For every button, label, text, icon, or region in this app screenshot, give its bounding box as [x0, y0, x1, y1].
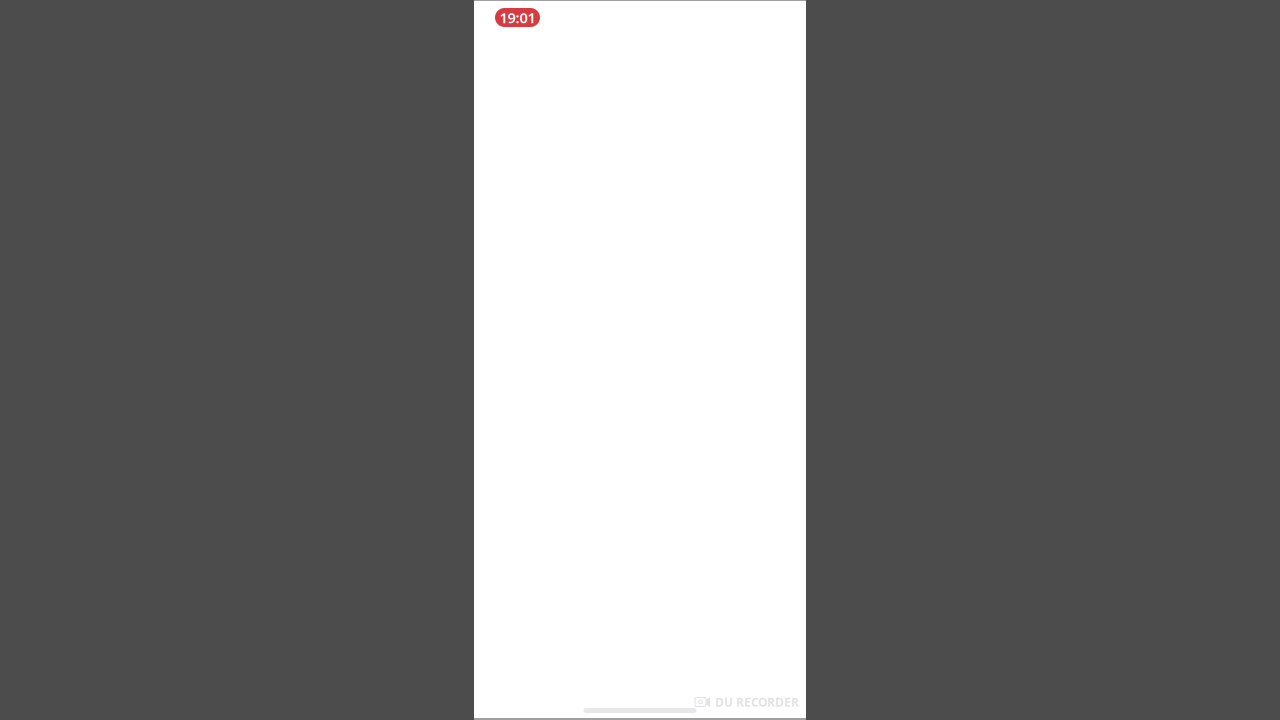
staticText: DU RECORDER: [715, 694, 799, 710]
staticText: 19:01: [499, 8, 535, 27]
button[interactable]: 19:01, screen recording in progress: [495, 8, 540, 27]
